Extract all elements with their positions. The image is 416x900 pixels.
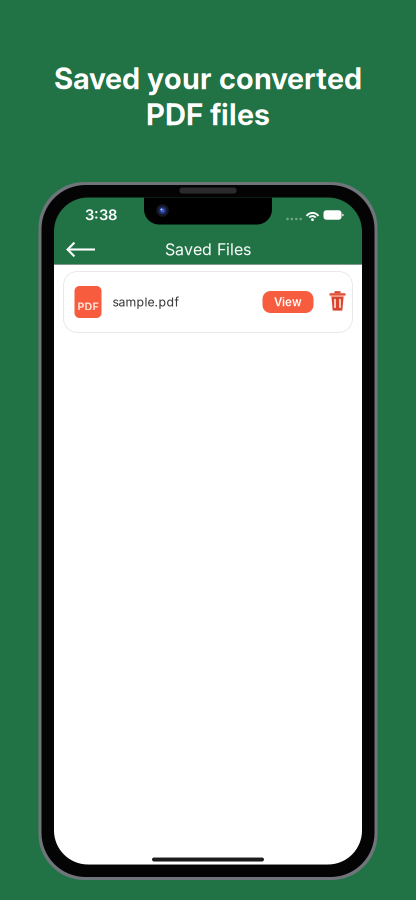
staticText: Saved your converted: [54, 61, 362, 96]
button[interactable]: View: [262, 291, 313, 313]
staticText: PDF: [77, 300, 98, 313]
staticText: 3:38: [85, 206, 117, 224]
staticText: View: [274, 295, 302, 309]
staticText: PDF files: [146, 97, 270, 132]
button[interactable]: Delete file: [324, 282, 350, 322]
staticText: Saved Files: [165, 240, 251, 259]
staticText: sample.pdf: [112, 295, 179, 309]
button[interactable]: Back: [60, 238, 102, 264]
